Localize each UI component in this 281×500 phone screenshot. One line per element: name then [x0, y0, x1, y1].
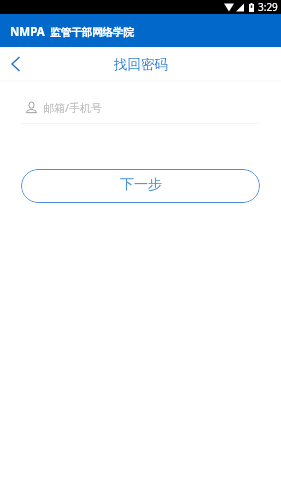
- staticText: 下一步: [120, 176, 162, 194]
- staticText: 监管干部网络学院: [50, 26, 134, 39]
- staticText: 找回密码: [114, 56, 168, 73]
- button[interactable]: Email or phone number input: [21, 100, 260, 124]
- button[interactable]: Back: [0, 48, 32, 80]
- button[interactable]: 下一步: [21, 169, 260, 203]
- staticText: 邮箱/手机号: [43, 100, 103, 114]
- staticText: 3:29: [258, 0, 278, 14]
- staticText: NMPA: [10, 24, 45, 40]
